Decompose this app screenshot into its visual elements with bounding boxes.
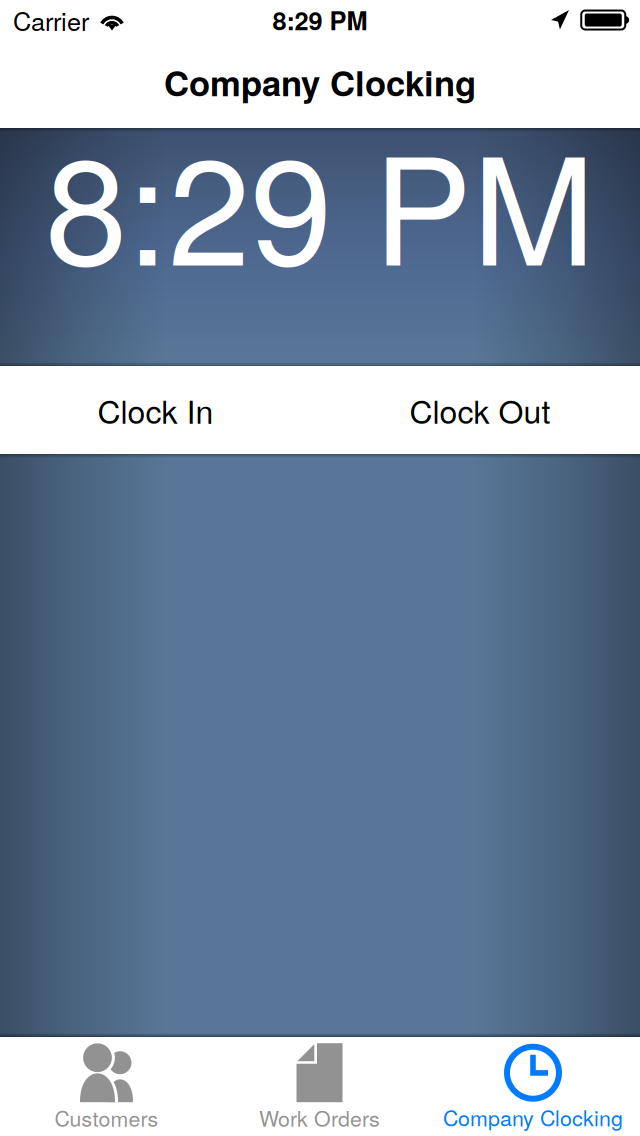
button[interactable]: Clock In [0,366,320,454]
staticText: Carrier [13,2,89,38]
staticText: Customers [54,1102,158,1133]
staticText: Clock In [97,387,213,433]
button[interactable]: Company Clocking [426,1037,640,1136]
staticText: Company Clocking [443,1102,623,1132]
staticText: Clock Out [409,387,550,433]
staticText: 8:29 PM [45,95,595,307]
staticText: 8:29 PM [272,2,367,38]
staticText: Company Clocking [164,57,476,107]
button[interactable]: Work Orders [213,1037,426,1136]
staticText: Work Orders [259,1102,380,1133]
button[interactable]: Clock Out [320,366,640,454]
button[interactable]: Customers [0,1037,213,1136]
